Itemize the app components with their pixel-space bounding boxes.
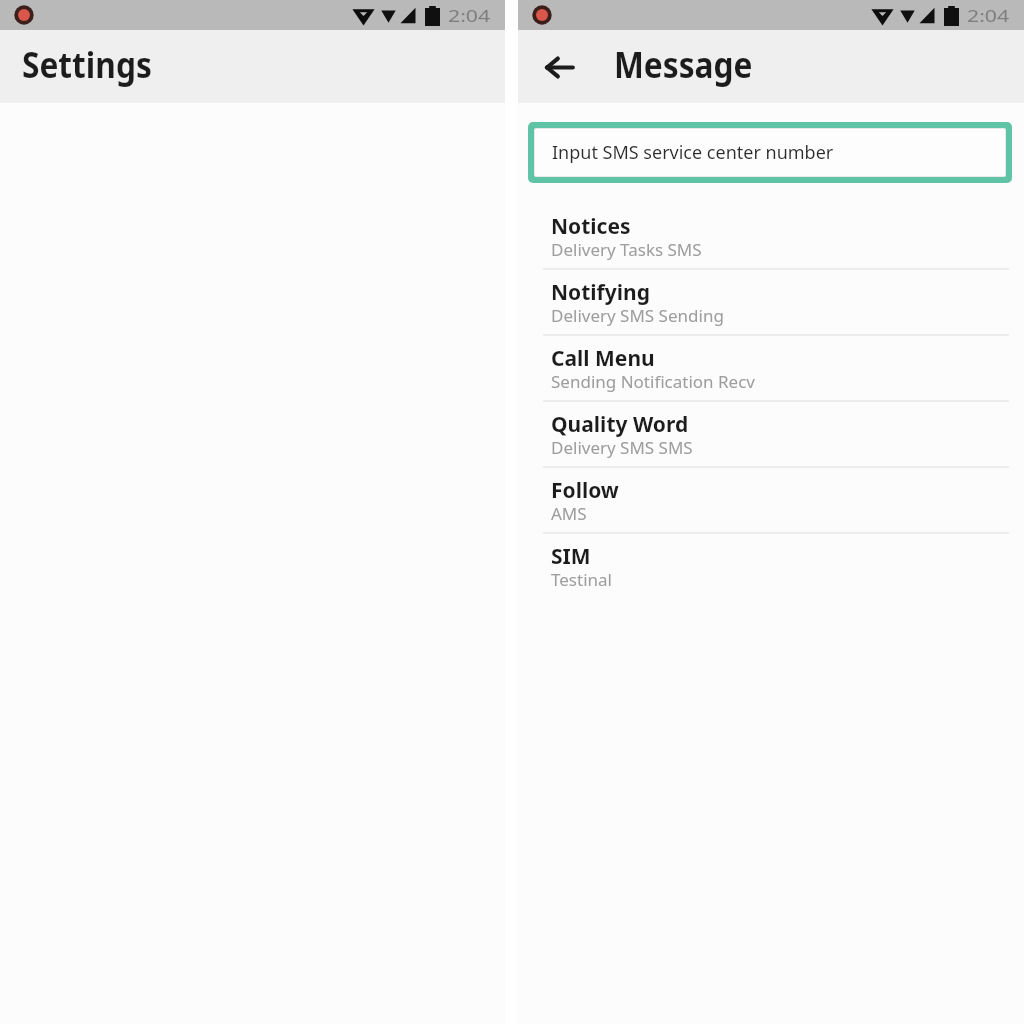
button[interactable]: Quality Word	[518, 402, 1024, 466]
staticText: 2:04	[967, 4, 1009, 27]
button[interactable]: Back	[518, 36, 580, 98]
staticText: Delivery SMS SMS	[551, 436, 693, 459]
staticText: Sending Notification Recv	[551, 370, 755, 393]
staticText: Settings	[22, 40, 152, 89]
staticText: Notices	[551, 212, 631, 241]
staticText: Quality Word	[551, 410, 689, 439]
staticText: Delivery Tasks SMS	[551, 238, 702, 261]
staticText: 2:04	[448, 4, 490, 27]
staticText: Follow	[551, 476, 619, 505]
staticText: Input SMS service center number	[552, 140, 834, 165]
staticText: AMS	[551, 502, 587, 525]
staticText: Delivery SMS Sending	[551, 304, 724, 327]
button[interactable]: Follow	[518, 468, 1024, 532]
staticText: Call Menu	[551, 344, 655, 373]
staticText: SIM	[551, 542, 591, 571]
staticText: Notifying	[551, 278, 650, 307]
button[interactable]: Notices	[518, 204, 1024, 268]
button[interactable]: Input SMS service center number	[528, 122, 1012, 183]
staticText: Message	[614, 40, 753, 89]
staticText: Testinal	[551, 568, 612, 591]
button[interactable]: SIM	[518, 534, 1024, 598]
button[interactable]: Notifying	[518, 270, 1024, 334]
button[interactable]: Call Menu	[518, 336, 1024, 400]
